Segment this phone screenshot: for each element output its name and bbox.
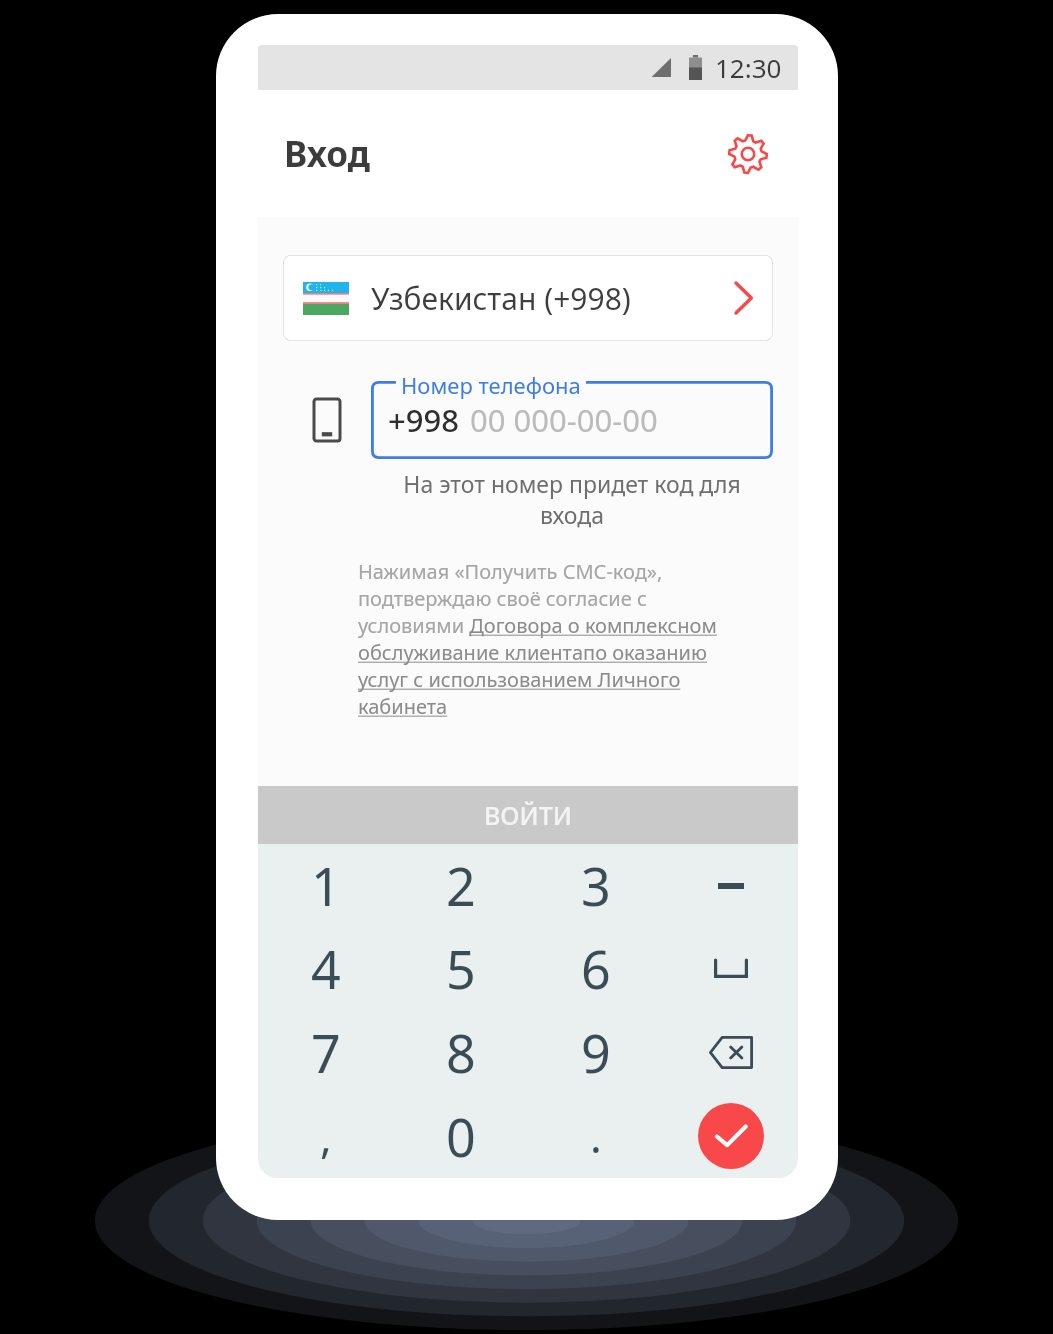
staticText: +998 [388, 399, 459, 441]
staticText: 1 [311, 850, 341, 921]
staticText: 6 [581, 933, 611, 1004]
button[interactable]: 8 [393, 1010, 528, 1094]
button[interactable]: Confirm [663, 1094, 798, 1178]
button[interactable]: Space [663, 927, 798, 1010]
button[interactable]: Узбекистан (+998) [283, 255, 773, 341]
button[interactable]: 0 [393, 1094, 528, 1178]
staticText: 0 [446, 1101, 476, 1172]
button[interactable]: 9 [528, 1010, 663, 1094]
staticText: , [320, 1106, 332, 1166]
button[interactable]: Settings [718, 124, 778, 184]
button[interactable]: 5 [393, 927, 528, 1010]
staticText: 3 [581, 850, 611, 921]
staticText: 7 [311, 1017, 341, 1088]
staticText: 4 [311, 933, 341, 1004]
button[interactable]: +998 [371, 381, 773, 459]
button[interactable]: ВОЙТИ [258, 786, 798, 844]
staticText: 00 000-00-00 [470, 399, 658, 441]
staticText: 9 [581, 1017, 611, 1088]
staticText: 5 [446, 933, 476, 1004]
button[interactable]: Нажимая «Получить СМС-код», подтверждаю … [358, 558, 736, 720]
button[interactable]: 2 [393, 844, 528, 927]
staticText: ВОЙТИ [484, 798, 572, 832]
staticText: 2 [446, 850, 476, 921]
staticText: 8 [446, 1017, 476, 1088]
button[interactable]: . [528, 1094, 663, 1178]
staticText: Нажимая «Получить СМС-код», подтверждаю … [358, 558, 736, 720]
button[interactable]: Backspace [663, 1010, 798, 1094]
staticText: Вход [284, 130, 370, 178]
staticText: Узбекистан (+998) [371, 278, 631, 319]
staticText: . [590, 1106, 602, 1166]
button[interactable]: 4 [258, 927, 393, 1010]
button[interactable]: Dash [663, 844, 798, 927]
button[interactable]: , [258, 1094, 393, 1178]
button[interactable]: 3 [528, 844, 663, 927]
staticText: Номер телефона [401, 370, 581, 400]
button[interactable]: 1 [258, 844, 393, 927]
staticText: На этот номер придет код для входа [371, 468, 773, 530]
button[interactable]: 6 [528, 927, 663, 1010]
button[interactable]: 7 [258, 1010, 393, 1094]
staticText: 12:30 [715, 50, 782, 85]
